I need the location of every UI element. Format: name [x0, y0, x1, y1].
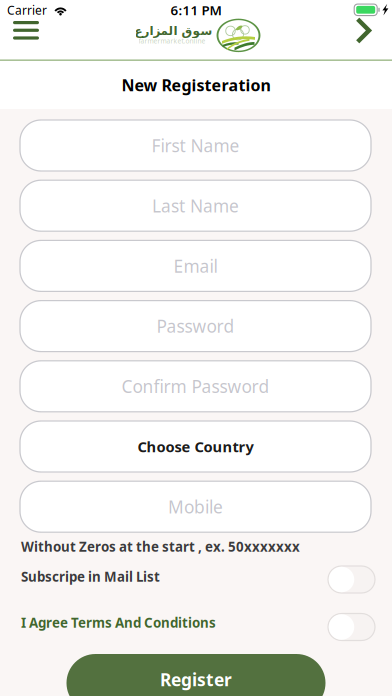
- button[interactable]: Password: [20, 301, 371, 352]
- staticText: Choose Country: [137, 437, 253, 456]
- button[interactable]: Confirm Password: [20, 361, 371, 412]
- staticText: Subscripe in Mail List: [21, 568, 160, 585]
- staticText: Email: [173, 254, 217, 277]
- button[interactable]: I Agree Terms And Conditions: [328, 613, 375, 640]
- staticText: Without Zeros at the start , ex. 50xxxxx…: [21, 538, 300, 555]
- button[interactable]: First Name: [20, 120, 371, 171]
- staticText: Confirm Password: [121, 375, 269, 398]
- button[interactable]: Register: [66, 654, 325, 696]
- staticText: I Agree Terms And Conditions: [21, 614, 216, 631]
- staticText: Mobile: [168, 495, 223, 518]
- staticText: Password: [156, 315, 234, 338]
- button[interactable]: Menu: [6, 10, 46, 50]
- button[interactable]: Last Name: [20, 180, 371, 231]
- staticText: farmermarket.online: [138, 36, 205, 45]
- button[interactable]: Subscripe in Mail List: [328, 566, 375, 593]
- button[interactable]: Email: [20, 240, 371, 291]
- staticText: Carrier: [7, 2, 47, 18]
- button[interactable]: Mobile: [20, 481, 371, 532]
- staticText: First Name: [151, 134, 239, 157]
- staticText: 6:11 PM: [170, 1, 221, 19]
- staticText: Register: [160, 668, 232, 691]
- staticText: New Registeration: [121, 74, 270, 96]
- staticText: سوق المزارع: [134, 24, 212, 38]
- button[interactable]: Choose Country: [20, 421, 371, 472]
- staticText: Last Name: [152, 194, 239, 217]
- button[interactable]: Forward: [343, 10, 383, 50]
